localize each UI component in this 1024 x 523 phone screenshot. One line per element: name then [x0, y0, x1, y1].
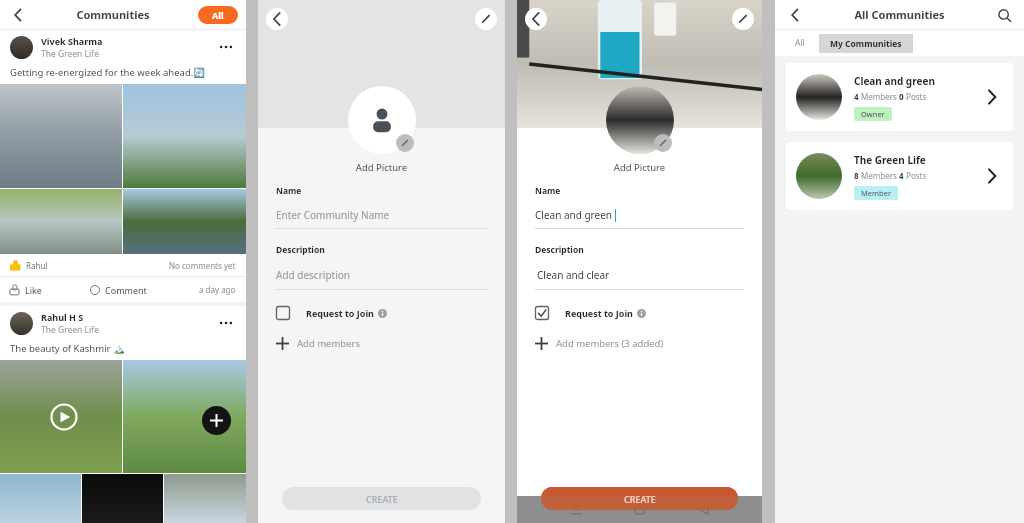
staticText: Description [276, 244, 325, 256]
button[interactable]: Edit cover photo [475, 8, 497, 30]
button[interactable]: Request to Join [535, 306, 646, 320]
staticText: The Green Life [854, 153, 926, 167]
staticText: My Communities [830, 38, 902, 50]
button[interactable]: The Green Life [786, 142, 1013, 210]
staticText: Vivek Sharma [41, 35, 103, 47]
staticText: Add members [297, 337, 361, 350]
staticText: Like [25, 284, 42, 296]
staticText: CREATE [624, 493, 656, 505]
button[interactable]: Vivek Sharma [10, 30, 236, 64]
staticText: Description [535, 244, 584, 256]
staticText: All Communities [805, 7, 994, 22]
button[interactable]: Info [637, 309, 646, 318]
button[interactable]: Comment [90, 284, 147, 296]
staticText: 8 [854, 170, 859, 181]
staticText: Getting re-energized for the week ahead.… [10, 66, 206, 79]
staticText: Posts [904, 91, 927, 102]
staticText: Add Picture [517, 161, 762, 174]
staticText: Add members (3 added) [556, 337, 664, 350]
staticText: Rahul H S [41, 311, 84, 323]
staticText: Clean and clear [537, 268, 610, 282]
staticText: No comments yet [169, 260, 236, 271]
button[interactable]: Open Clean and green [981, 86, 1003, 108]
button[interactable]: CREATE [541, 487, 738, 510]
staticText: The beauty of Kashmir 🏔 [10, 342, 125, 355]
button[interactable]: CREATE [541, 487, 738, 510]
staticText: CREATE [366, 493, 398, 505]
staticText: The Green Life [41, 324, 99, 336]
staticText: Add Picture [258, 161, 505, 174]
button[interactable]: Back [8, 5, 28, 25]
staticText: Communities [28, 7, 198, 22]
button[interactable]: Back [785, 5, 805, 25]
staticText: Add description [276, 268, 350, 282]
button[interactable]: Clean and green [786, 63, 1013, 131]
button[interactable]: Info [378, 309, 387, 318]
staticText: Clean and green [854, 74, 935, 88]
button[interactable]: All [789, 34, 811, 52]
button[interactable]: More photos [202, 406, 231, 435]
staticText: 0 [899, 91, 904, 102]
staticText: a day ago [199, 284, 236, 295]
button[interactable]: Like [10, 284, 48, 296]
button[interactable]: CREATE [282, 487, 481, 510]
staticText: Member [861, 188, 891, 198]
staticText: Name [535, 185, 561, 197]
staticText: 4 [854, 91, 859, 102]
button[interactable]: Open The Green Life [981, 165, 1003, 187]
button[interactable]: Back [266, 8, 288, 30]
staticText: Comment [105, 284, 147, 296]
staticText: CREATE [624, 493, 656, 505]
button[interactable]: Add picture [396, 134, 414, 152]
staticText: Request to Join [306, 307, 374, 319]
button[interactable]: More options [216, 313, 236, 333]
staticText: All [795, 37, 805, 49]
staticText: Request to Join [565, 307, 633, 319]
button[interactable]: Play video [50, 403, 78, 431]
staticText: Clean and green [535, 208, 613, 222]
button[interactable]: Back [525, 8, 547, 30]
staticText: Members [859, 91, 899, 102]
button[interactable]: Rahul H S [10, 306, 236, 340]
button[interactable]: All [198, 6, 238, 24]
staticText: Enter Community Name [276, 208, 390, 222]
button[interactable]: Request to Join [276, 306, 387, 320]
button[interactable]: Add members [276, 337, 361, 350]
staticText: The Green Life [41, 48, 99, 60]
staticText: Members [859, 170, 899, 181]
staticText: Name [276, 185, 302, 197]
staticText: 4 [899, 170, 904, 181]
staticText: Owner [861, 109, 885, 119]
button[interactable]: More options [216, 37, 236, 57]
button[interactable]: Add picture [654, 134, 672, 152]
button[interactable]: Search [994, 5, 1014, 25]
button[interactable]: Add members (3 added) [535, 337, 664, 350]
button[interactable]: My Communities [819, 34, 913, 53]
staticText: Rahul [26, 260, 48, 271]
staticText: Posts [904, 170, 927, 181]
staticText: All [212, 9, 224, 21]
button[interactable]: Edit cover photo [732, 8, 754, 30]
